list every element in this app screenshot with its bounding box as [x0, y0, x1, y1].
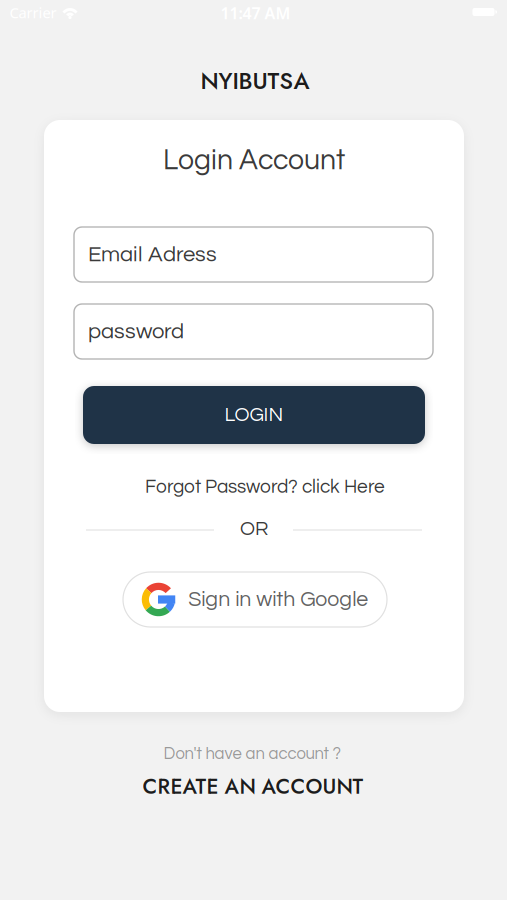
button[interactable]: LOGIN: [83, 386, 425, 444]
staticText: 11:47 AM: [220, 2, 290, 24]
staticText: NYIBUTSA: [200, 64, 309, 98]
staticText: Email Adress: [88, 243, 217, 266]
staticText: Sign in with Google: [188, 588, 368, 610]
staticText: Login Account: [163, 146, 345, 175]
staticText: password: [88, 320, 184, 343]
staticText: OR: [240, 519, 268, 539]
staticText: Forgot Password? click Here: [145, 477, 385, 497]
button[interactable]: Don't have an account ?: [163, 745, 341, 763]
staticText: Don't have an account ?: [163, 745, 341, 763]
button[interactable]: CREATE AN ACCOUNT: [142, 771, 363, 802]
button[interactable]: password: [74, 304, 433, 359]
button[interactable]: Email Adress: [74, 227, 433, 282]
button[interactable]: Sign in with Google: [123, 572, 387, 627]
staticText: CREATE AN ACCOUNT: [142, 771, 363, 802]
staticText: Carrier: [9, 3, 56, 22]
staticText: LOGIN: [224, 405, 283, 425]
button[interactable]: Forgot Password? click Here: [145, 477, 385, 497]
